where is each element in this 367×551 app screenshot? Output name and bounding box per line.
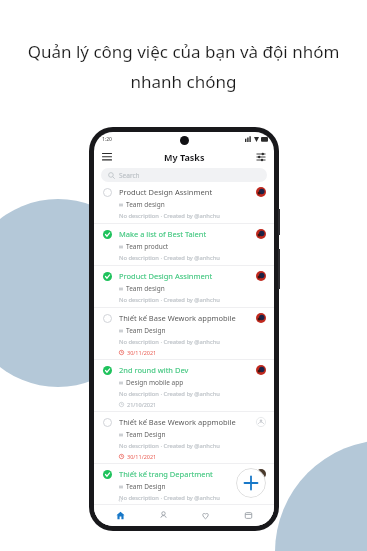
- staticText: Team Design: [126, 326, 166, 335]
- staticText: nhanh chóng: [18, 70, 349, 93]
- button[interactable]: Thiết kế Base Wework appmobile: [94, 308, 274, 360]
- staticText: Team product: [126, 242, 169, 251]
- staticText: Team Design: [126, 430, 166, 439]
- button[interactable]: Product Design Assinment: [94, 182, 274, 224]
- button[interactable]: Add task: [236, 468, 266, 498]
- button[interactable]: Profile: [146, 504, 180, 526]
- staticText: Design mobile app: [126, 378, 184, 387]
- staticText: 30/11/2021: [127, 349, 157, 356]
- button[interactable]: Home: [103, 504, 137, 526]
- staticText: Search: [119, 171, 140, 180]
- staticText: No description · Created by @anhchu: [119, 212, 220, 220]
- button[interactable]: 2nd round with Dev: [94, 360, 274, 412]
- staticText: No description · Created by @anhchu: [119, 494, 220, 501]
- staticText: Team design: [126, 284, 165, 293]
- button[interactable]: Thiết kế Base Wework appmobile: [94, 412, 274, 464]
- staticText: 21/10/2021: [127, 401, 157, 408]
- staticText: No description · Created by @anhchu: [119, 442, 220, 450]
- staticText: No description · Created by @anhchu: [119, 296, 220, 304]
- staticText: My Tasks: [164, 151, 205, 163]
- staticText: Team Design: [126, 482, 166, 491]
- button[interactable]: Saved: [231, 504, 265, 526]
- staticText: Thiết kế Base Wework appmobile: [119, 313, 236, 323]
- staticText: 30/11/2021: [127, 453, 157, 460]
- staticText: Make a list of Best Talent: [119, 229, 207, 239]
- staticText: Team design: [126, 200, 165, 209]
- button[interactable]: Search: [101, 168, 267, 182]
- staticText: Quản lý công việc của bạn và đội nhóm: [18, 40, 349, 63]
- staticText: Thiết kế trang Department: [119, 469, 213, 479]
- button[interactable]: Thiết kế trang Department: [94, 464, 274, 504]
- button[interactable]: Make a list of Best Talent: [94, 224, 274, 266]
- staticText: No description · Created by @anhchu: [119, 390, 220, 398]
- button[interactable]: Favourites: [188, 504, 222, 526]
- staticText: No description · Created by @anhchu: [119, 254, 220, 262]
- staticText: 1:20: [102, 136, 112, 143]
- staticText: Thiết kế Base Wework appmobile: [119, 417, 236, 427]
- staticText: Product Design Assinment: [119, 187, 213, 197]
- button[interactable]: Product Design Assinment: [94, 266, 274, 308]
- staticText: No description · Created by @anhchu: [119, 338, 220, 346]
- staticText: Product Design Assinment: [119, 271, 213, 281]
- staticText: 2nd round with Dev: [119, 365, 189, 375]
- button[interactable]: Menu: [100, 150, 114, 164]
- button[interactable]: Filter: [254, 150, 268, 164]
